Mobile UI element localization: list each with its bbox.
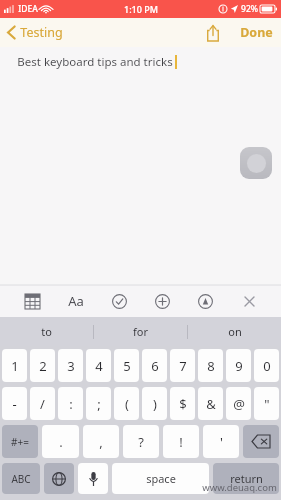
button[interactable]: - <box>2 387 27 420</box>
button[interactable]: " <box>254 387 279 420</box>
button[interactable]: . <box>42 425 79 458</box>
button[interactable]: Delete <box>243 425 279 458</box>
button[interactable]: 7 <box>170 349 195 382</box>
button[interactable]: ! <box>163 425 199 458</box>
staticText: ; <box>97 395 101 413</box>
staticText: & <box>206 395 216 413</box>
staticText: 5 <box>123 357 131 375</box>
button[interactable]: Share <box>200 18 226 47</box>
button[interactable]: return <box>213 463 279 494</box>
staticText: 92% <box>241 3 258 15</box>
button[interactable]: space <box>112 463 209 494</box>
staticText: 7 <box>179 357 187 375</box>
button[interactable]: on <box>188 317 281 346</box>
button[interactable]: Change keyboard <box>44 463 74 494</box>
staticText: ' <box>220 433 223 451</box>
staticText: #+= <box>11 435 29 449</box>
button[interactable]: #+= <box>2 425 38 458</box>
button[interactable]: Add <box>145 286 179 316</box>
button[interactable]: Aa <box>59 286 93 316</box>
staticText: ) <box>153 395 157 413</box>
staticText: Aa <box>68 292 84 310</box>
staticText: @ <box>233 395 245 413</box>
staticText: 1 <box>11 357 19 375</box>
staticText: on <box>228 324 242 339</box>
staticText: ABC <box>11 472 31 486</box>
button[interactable]: 6 <box>142 349 167 382</box>
button[interactable]: ABC <box>2 463 40 494</box>
staticText: " <box>264 395 270 413</box>
staticText: www.deuaq.com <box>202 481 277 494</box>
button[interactable]: 1 <box>2 349 27 382</box>
button[interactable]: to <box>0 317 93 346</box>
button[interactable]: 9 <box>226 349 251 382</box>
staticText: . <box>59 433 63 451</box>
button[interactable]: ? <box>123 425 159 458</box>
button[interactable]: Dictation <box>78 463 108 494</box>
button[interactable]: , <box>83 425 119 458</box>
staticText: Done <box>240 24 273 41</box>
staticText: , <box>99 433 103 451</box>
button[interactable]: Checklist <box>102 286 136 316</box>
button[interactable]: ( <box>114 387 139 420</box>
button[interactable]: 0 <box>254 349 279 382</box>
button[interactable]: Close <box>232 286 266 316</box>
staticText: 8 <box>207 357 215 375</box>
staticText: Testing <box>20 24 63 41</box>
button[interactable]: for <box>94 317 187 346</box>
button[interactable]: : <box>58 387 83 420</box>
button[interactable]: Markup <box>188 286 222 316</box>
staticText: 3 <box>67 357 75 375</box>
staticText: ( <box>125 395 129 413</box>
staticText: : <box>69 395 73 413</box>
staticText: ! <box>179 433 183 451</box>
button[interactable]: Table <box>15 286 49 316</box>
button[interactable]: / <box>30 387 55 420</box>
button[interactable]: Handle <box>240 147 272 179</box>
staticText: $ <box>179 395 187 413</box>
staticText: return <box>230 471 263 486</box>
button[interactable]: Done <box>232 18 281 47</box>
button[interactable]: ' <box>203 425 239 458</box>
button[interactable]: 2 <box>30 349 55 382</box>
button[interactable]: Testing <box>7 18 69 47</box>
staticText: 1:10 PM <box>124 3 158 15</box>
staticText: IDEA <box>18 3 38 15</box>
button[interactable]: 8 <box>198 349 223 382</box>
button[interactable]: ) <box>142 387 167 420</box>
button[interactable]: 3 <box>58 349 83 382</box>
staticText: Best keyboard tips and tricks <box>17 54 173 70</box>
button[interactable]: @ <box>226 387 251 420</box>
staticText: - <box>12 395 17 413</box>
button[interactable]: & <box>198 387 223 420</box>
staticText: 4 <box>95 357 103 375</box>
staticText: space <box>146 471 176 486</box>
staticText: / <box>40 395 45 413</box>
staticText: for <box>133 324 148 339</box>
staticText: 6 <box>151 357 159 375</box>
staticText: to <box>41 324 52 339</box>
staticText: 2 <box>39 357 47 375</box>
button[interactable]: ; <box>86 387 111 420</box>
button[interactable]: 5 <box>114 349 139 382</box>
button[interactable]: 4 <box>86 349 111 382</box>
staticText: 0 <box>263 357 271 375</box>
staticText: ? <box>138 433 144 451</box>
staticText: 9 <box>235 357 243 375</box>
button[interactable]: $ <box>170 387 195 420</box>
